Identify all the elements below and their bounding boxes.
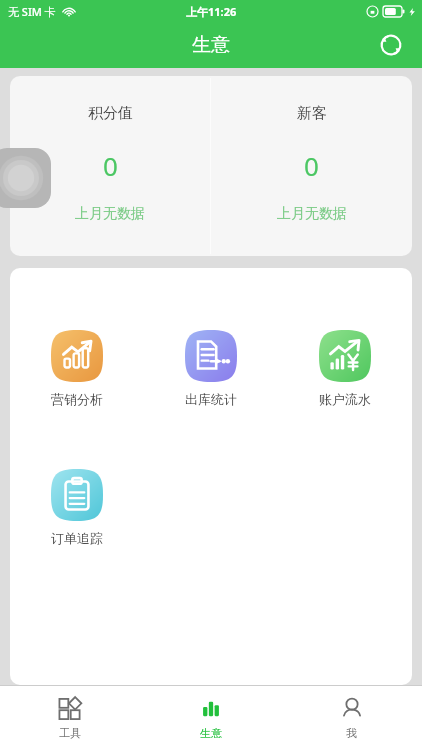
staticText: 订单追踪	[51, 530, 103, 546]
staticText: 积分值	[88, 104, 133, 123]
staticText: 0	[103, 148, 118, 183]
staticText: 生意	[200, 726, 222, 740]
staticText: 工具	[59, 726, 81, 740]
staticText: 上月无数据	[75, 205, 145, 223]
staticText: 0	[304, 148, 319, 183]
staticText: 营销分析	[51, 391, 103, 407]
button[interactable]: 出库统计	[144, 330, 278, 407]
button[interactable]: 积分值	[10, 76, 210, 256]
staticText: 无 SIM 卡	[8, 4, 56, 19]
button[interactable]: 工具	[0, 686, 140, 750]
button[interactable]: 订单追踪	[10, 469, 144, 546]
staticText: 出库统计	[185, 391, 237, 407]
button[interactable]: 我	[281, 686, 422, 750]
button[interactable]: Refresh	[374, 28, 408, 62]
staticText: 上月无数据	[277, 205, 347, 223]
staticText: 账户流水	[319, 391, 371, 407]
button[interactable]: 营销分析	[10, 330, 144, 407]
button[interactable]: Assistive touch	[0, 148, 51, 208]
button[interactable]: 生意	[140, 686, 281, 750]
staticText: 生意	[192, 33, 230, 57]
staticText: 我	[346, 726, 357, 740]
staticText: 新客	[297, 104, 327, 123]
button[interactable]: 账户流水	[278, 330, 412, 407]
button[interactable]: 新客	[211, 76, 412, 256]
staticText: 上午11:26	[186, 4, 237, 19]
